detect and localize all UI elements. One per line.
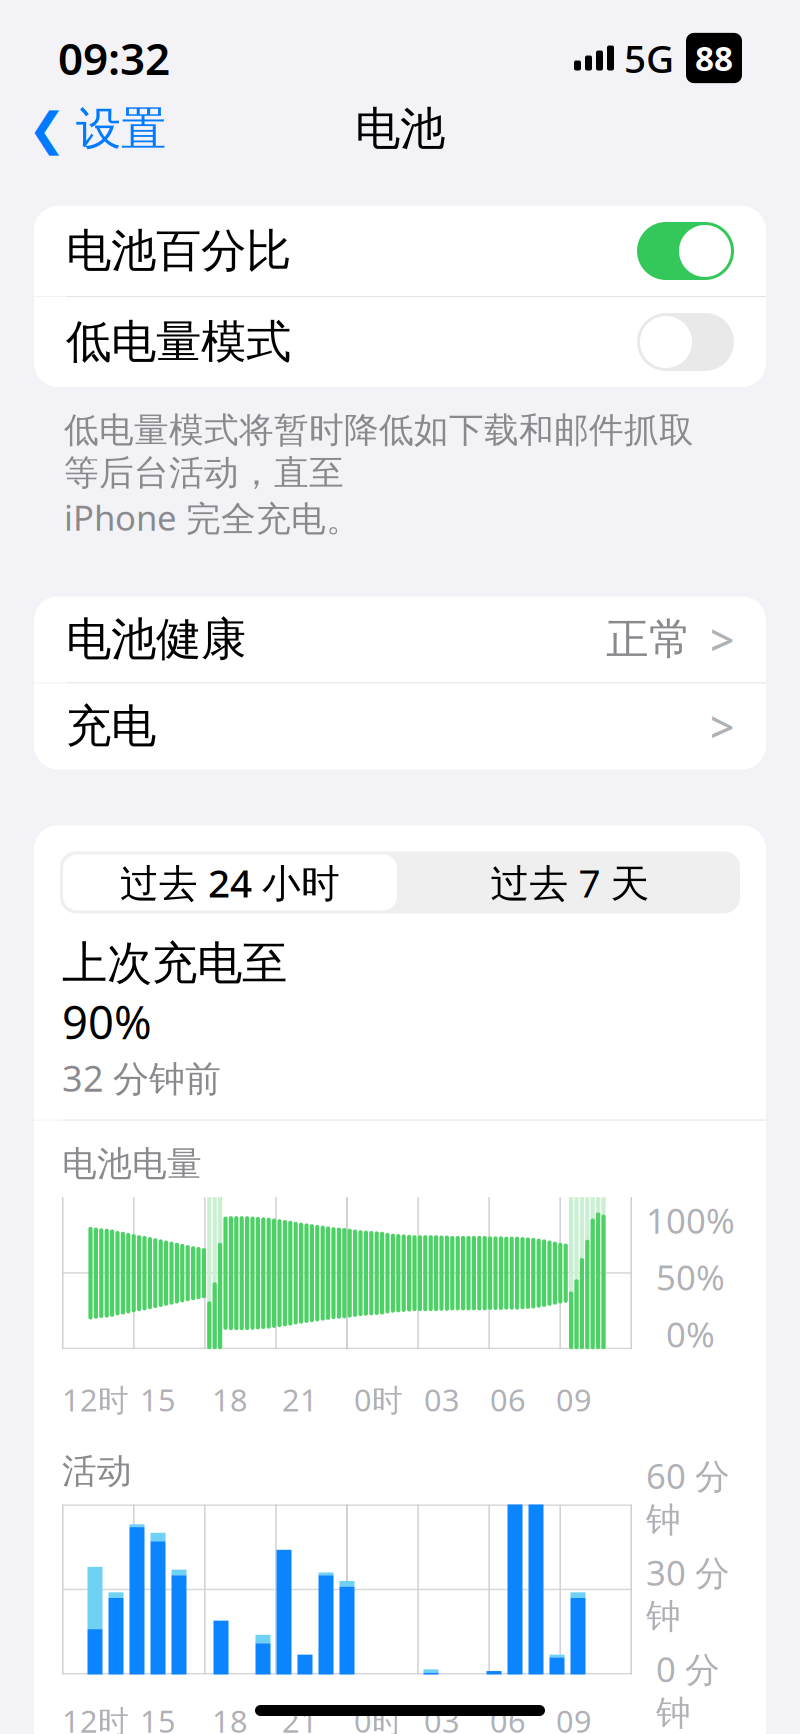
staticText: 活动 bbox=[62, 1450, 132, 1492]
staticText: 5G bbox=[624, 32, 674, 84]
staticText: 100% bbox=[646, 1197, 735, 1243]
staticText: 15 bbox=[140, 1379, 176, 1420]
button[interactable]: 过去 7 天 bbox=[400, 854, 740, 910]
button[interactable]: 过去 24 小时 bbox=[60, 851, 400, 913]
button[interactable]: 电池健康 bbox=[34, 596, 766, 682]
staticText: 低电量模式 bbox=[66, 314, 291, 370]
staticText: ❮ bbox=[28, 103, 66, 155]
staticText: 0% bbox=[666, 1311, 715, 1357]
staticText: 18 bbox=[212, 1379, 248, 1420]
button[interactable]: 充电 bbox=[34, 683, 766, 769]
staticText: 0时 bbox=[354, 1379, 403, 1420]
staticText: 电池电量 bbox=[62, 1143, 202, 1185]
staticText: 09 bbox=[556, 1700, 592, 1734]
staticText: 21 bbox=[282, 1700, 318, 1734]
staticText: 电池健康 bbox=[66, 611, 246, 667]
staticText: 正常 bbox=[606, 613, 692, 666]
staticText: 过去 24 小时 bbox=[120, 857, 340, 908]
staticText: 06 bbox=[490, 1379, 526, 1420]
staticText: 03 bbox=[424, 1700, 460, 1734]
staticText: 设置 bbox=[76, 101, 166, 157]
button[interactable]: 低电量模式 bbox=[34, 297, 766, 387]
staticText: 18 bbox=[212, 1700, 248, 1734]
staticText: 32 分钟前 bbox=[62, 1054, 221, 1102]
staticText: 过去 7 天 bbox=[490, 857, 649, 908]
button[interactable]: 电池百分比 bbox=[34, 206, 766, 296]
staticText: > bbox=[710, 698, 734, 755]
button[interactable]: ❮ bbox=[16, 93, 178, 165]
staticText: 09 bbox=[556, 1379, 592, 1420]
staticText: 88 bbox=[695, 36, 733, 80]
staticText: > bbox=[710, 611, 734, 668]
staticText: 电池 bbox=[355, 101, 445, 157]
staticText: 充电 bbox=[66, 698, 156, 754]
staticText: 30 分钟 bbox=[646, 1549, 730, 1638]
staticText: 06 bbox=[490, 1700, 526, 1734]
staticText: 电池百分比 bbox=[66, 223, 291, 279]
staticText: 上次充电至 90% bbox=[62, 931, 287, 1052]
staticText: 60 分钟 bbox=[646, 1452, 730, 1541]
staticText: 50% bbox=[656, 1254, 725, 1300]
staticText: 15 bbox=[140, 1700, 176, 1734]
staticText: 0时 bbox=[354, 1700, 403, 1734]
staticText: 12时 bbox=[62, 1379, 129, 1420]
staticText: 09:32 bbox=[58, 29, 170, 87]
staticText: 03 bbox=[424, 1379, 460, 1420]
staticText: 低电量模式将暂时降低如下载和邮件抓取等后台活动，直至 iPhone 完全充电。 bbox=[64, 409, 694, 540]
staticText: 12时 bbox=[62, 1700, 129, 1734]
staticText: 0 分钟 bbox=[656, 1646, 720, 1734]
staticText: 21 bbox=[282, 1379, 318, 1420]
